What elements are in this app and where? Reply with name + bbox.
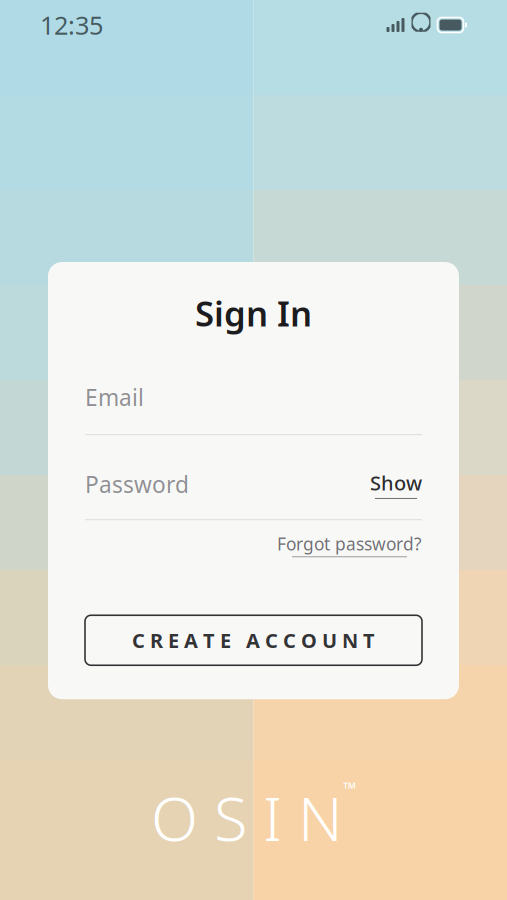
staticText: O S I N: [151, 777, 343, 858]
staticText: 12:35: [40, 8, 103, 42]
button[interactable]: Show: [370, 469, 422, 499]
staticText: Sign In: [195, 290, 312, 336]
staticText: Forgot password?: [277, 532, 422, 555]
button[interactable]: C R E A T E A C C O U N T: [85, 615, 422, 665]
staticText: Show: [370, 469, 422, 496]
staticText: ™: [343, 777, 356, 800]
staticText: C R E A T E A C C O U N T: [132, 627, 375, 654]
staticText: Email: [85, 382, 144, 412]
button[interactable]: Forgot password?: [277, 532, 422, 557]
staticText: Password: [85, 469, 189, 499]
